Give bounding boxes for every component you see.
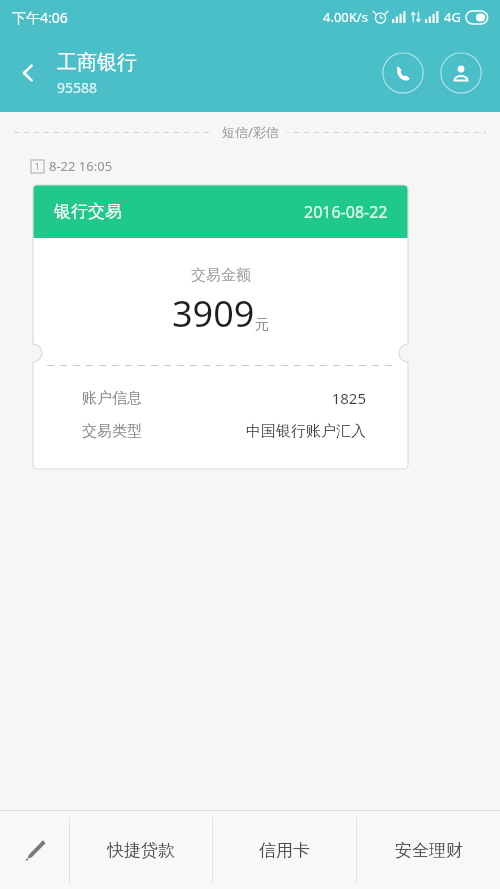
staticText: 快捷贷款: [107, 840, 175, 861]
staticText: 3909: [172, 289, 255, 338]
staticText: 银行交易: [54, 201, 122, 222]
button[interactable]: Compose message: [0, 811, 69, 889]
staticText: 交易金额: [191, 266, 251, 285]
button[interactable]: 银行交易: [33, 185, 408, 469]
button[interactable]: Back: [6, 51, 50, 95]
button[interactable]: 快捷贷款: [70, 811, 212, 889]
button[interactable]: 安全理财: [357, 811, 500, 889]
staticText: 1825: [331, 388, 366, 408]
staticText: 短信/彩信: [222, 123, 279, 141]
staticText: 信用卡: [259, 840, 310, 861]
staticText: 8-22 16:05: [49, 157, 113, 175]
staticText: 安全理财: [395, 840, 463, 861]
staticText: 工商银行: [57, 50, 137, 75]
button[interactable]: Contact: [440, 52, 482, 94]
staticText: 95588: [57, 78, 98, 97]
staticText: 4.00K/s: [323, 8, 368, 26]
staticText: 账户信息: [82, 389, 142, 408]
staticText: 下午4:06: [12, 8, 68, 27]
staticText: 1: [35, 161, 40, 172]
staticText: 4G: [444, 8, 461, 26]
button[interactable]: 信用卡: [213, 811, 356, 889]
staticText: 交易类型: [82, 422, 142, 441]
button[interactable]: Call: [382, 52, 424, 94]
staticText: 中国银行账户汇入: [246, 422, 366, 441]
staticText: 元: [255, 316, 269, 334]
staticText: 2016-08-22: [304, 201, 388, 223]
